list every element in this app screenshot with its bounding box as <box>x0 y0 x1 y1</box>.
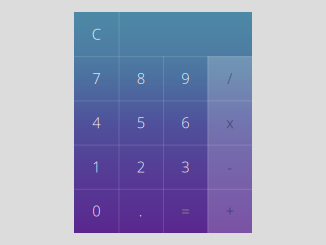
button[interactable]: 4 <box>74 100 118 145</box>
staticText: 0 <box>92 201 100 221</box>
button[interactable]: 8 <box>118 56 163 100</box>
staticText: 1 <box>92 157 100 176</box>
staticText: 9 <box>181 69 189 88</box>
button[interactable]: Equals <box>163 189 207 233</box>
button[interactable]: 6 <box>163 100 207 145</box>
button[interactable]: 2 <box>118 145 163 189</box>
button[interactable]: Decimal point <box>118 189 163 233</box>
staticText: + <box>226 201 234 221</box>
staticText: . <box>139 201 143 221</box>
button[interactable]: Divide <box>207 56 252 100</box>
button[interactable]: 3 <box>163 145 207 189</box>
staticText: C <box>92 24 101 44</box>
button[interactable]: 1 <box>74 145 118 189</box>
button[interactable]: Add <box>207 189 252 233</box>
staticText: 6 <box>181 113 189 132</box>
button[interactable]: 0 <box>74 189 118 233</box>
button[interactable]: 9 <box>163 56 207 100</box>
staticText: 8 <box>137 69 145 88</box>
staticText: 3 <box>181 157 189 176</box>
staticText: 5 <box>137 113 145 132</box>
button[interactable]: Multiply <box>207 100 252 145</box>
staticText: x <box>226 113 233 132</box>
staticText: 4 <box>92 113 100 132</box>
staticText: = <box>181 201 189 221</box>
staticText: 7 <box>92 69 100 88</box>
staticText: / <box>227 69 232 88</box>
staticText: - <box>227 157 232 176</box>
button[interactable]: 7 <box>74 56 118 100</box>
button[interactable]: Subtract <box>207 145 252 189</box>
button[interactable]: 5 <box>118 100 163 145</box>
staticText: 2 <box>137 157 145 176</box>
button[interactable]: Clear <box>74 12 118 56</box>
